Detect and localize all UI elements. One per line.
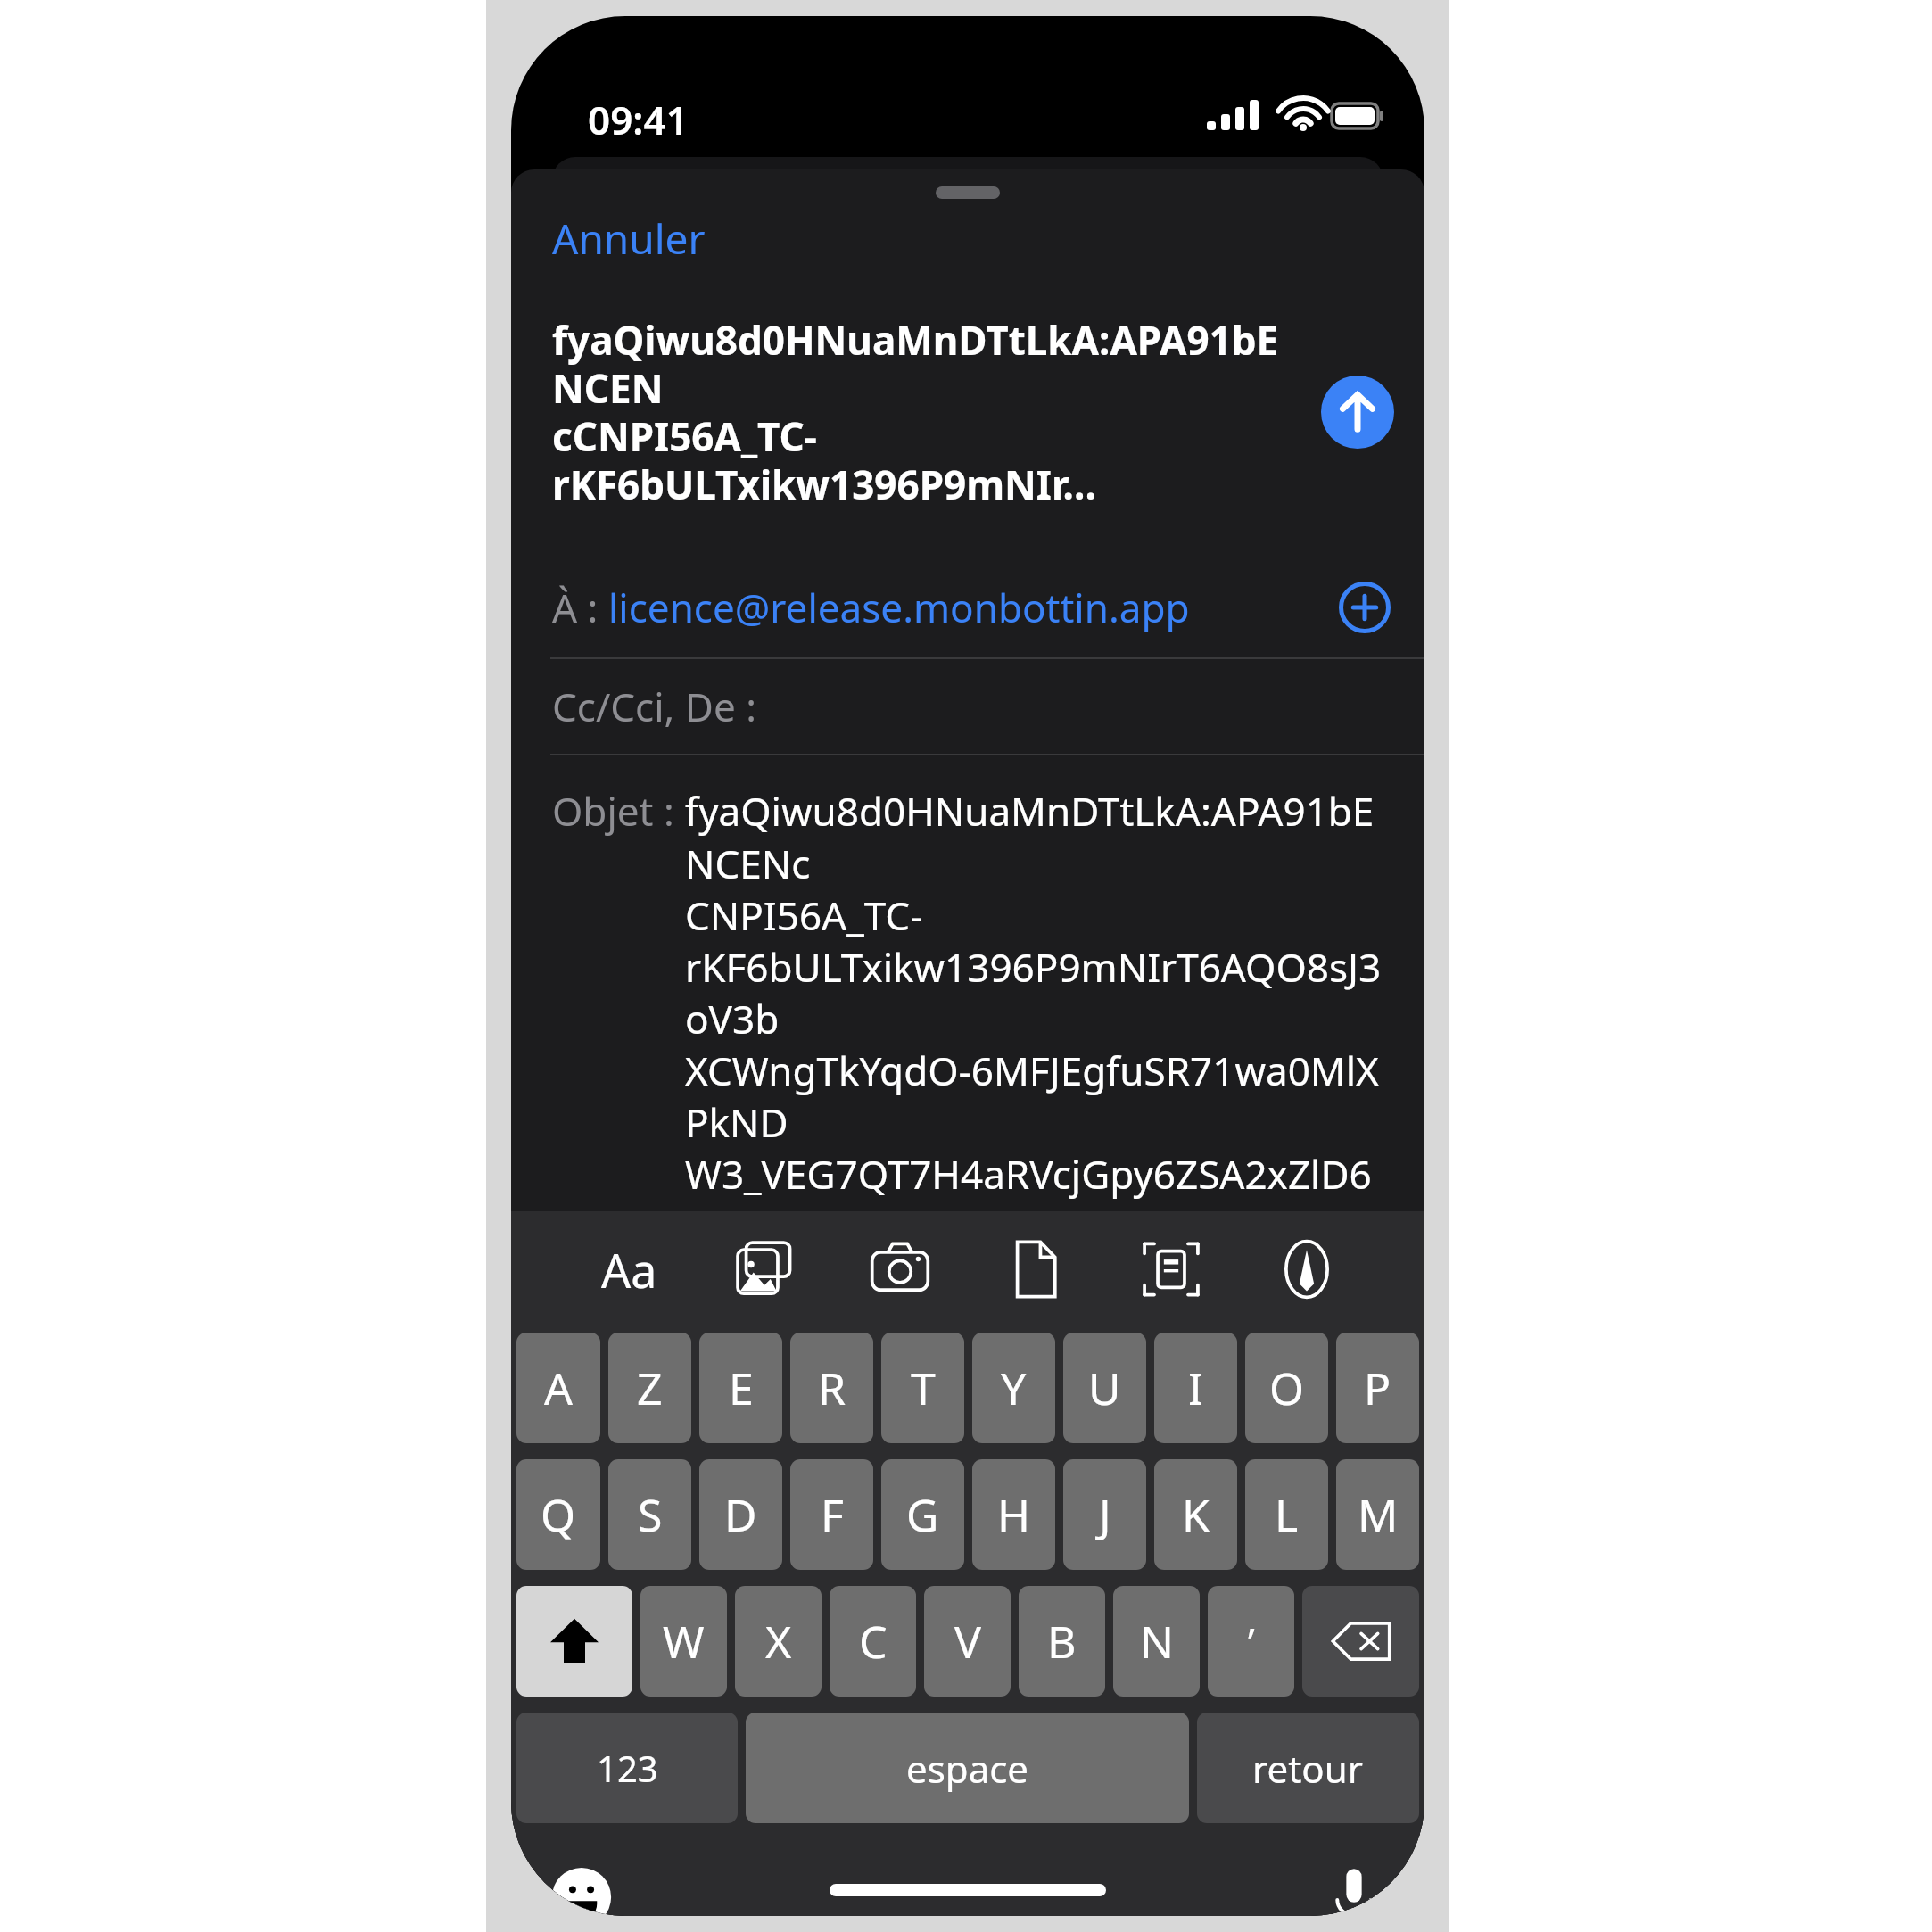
button[interactable]: Saisissez ici votre message xyxy=(511,1332,1424,1916)
staticText: Z xyxy=(637,1358,663,1418)
button[interactable]: Objet : xyxy=(511,755,1424,1330)
staticText: Cc/Cci, De : xyxy=(552,680,756,733)
button[interactable]: W xyxy=(640,1586,727,1697)
button[interactable]: Majuscule xyxy=(516,1586,632,1697)
button[interactable]: T xyxy=(881,1333,964,1443)
button[interactable]: C xyxy=(830,1586,916,1697)
button[interactable]: Annotation xyxy=(1264,1226,1350,1312)
staticText: W xyxy=(663,1611,705,1672)
button[interactable]: S xyxy=(608,1459,691,1570)
button[interactable]: P xyxy=(1336,1333,1419,1443)
button[interactable]: D xyxy=(699,1459,782,1570)
staticText: Q xyxy=(541,1484,576,1545)
button[interactable]: H xyxy=(972,1459,1055,1570)
button[interactable]: O xyxy=(1245,1333,1328,1443)
button[interactable]: ’ xyxy=(1208,1586,1294,1697)
staticText: I xyxy=(1188,1358,1203,1418)
button[interactable]: espace xyxy=(746,1713,1189,1823)
button[interactable]: Cc/Cci, De : xyxy=(511,659,1424,754)
staticText: P xyxy=(1364,1358,1391,1418)
staticText: M xyxy=(1358,1484,1399,1545)
button[interactable]: J xyxy=(1063,1459,1146,1570)
staticText: L xyxy=(1275,1484,1299,1545)
staticText: fyaQiwu8d0HNuaMnDTtLkA:APA91bENCENc CNPI… xyxy=(685,784,1394,1303)
staticText: J xyxy=(1099,1484,1111,1545)
staticText: H xyxy=(997,1484,1031,1545)
button[interactable]: L xyxy=(1245,1459,1328,1570)
staticText: C xyxy=(859,1611,888,1672)
button[interactable]: À : xyxy=(511,557,1424,657)
staticText: S xyxy=(638,1484,663,1545)
staticText: fyaQiwu8d0HNuaMnDTtLkA:APA91bENCEN cCNPI… xyxy=(552,313,1307,511)
staticText: 123 xyxy=(597,1744,658,1792)
staticText: À : xyxy=(552,581,608,634)
button[interactable]: retour xyxy=(1197,1713,1419,1823)
staticText: ’ xyxy=(1248,1614,1255,1668)
button[interactable]: R xyxy=(790,1333,873,1443)
staticText: T xyxy=(911,1358,936,1418)
staticText: 09:41 xyxy=(588,93,689,146)
staticText: R xyxy=(818,1358,846,1418)
staticText: licence@release.monbottin.app xyxy=(608,581,1190,634)
staticText: retour xyxy=(1252,1743,1364,1794)
staticText: D xyxy=(724,1484,757,1545)
staticText: V xyxy=(954,1611,981,1672)
button[interactable]: Envoyer xyxy=(1321,376,1394,449)
button[interactable]: E xyxy=(699,1333,782,1443)
button[interactable]: M xyxy=(1336,1459,1419,1570)
button[interactable]: Appareil photo xyxy=(857,1226,943,1312)
button[interactable]: K xyxy=(1154,1459,1237,1570)
button[interactable]: Numériser xyxy=(1128,1226,1214,1312)
staticText: F xyxy=(821,1484,844,1545)
button[interactable]: I xyxy=(1154,1333,1237,1443)
button[interactable]: N xyxy=(1113,1586,1200,1697)
staticText: espace xyxy=(906,1743,1029,1794)
button[interactable]: Photothèque xyxy=(722,1226,807,1312)
staticText: E xyxy=(729,1358,754,1418)
button[interactable]: Q xyxy=(516,1459,600,1570)
staticText: U xyxy=(1088,1358,1121,1418)
staticText: Saisissez ici votre message xyxy=(556,1355,1069,1411)
button[interactable]: X xyxy=(735,1586,822,1697)
button[interactable]: V xyxy=(924,1586,1011,1697)
button[interactable]: Dictée xyxy=(1314,1857,1394,1916)
staticText: K xyxy=(1182,1484,1210,1545)
button[interactable]: Supprimer xyxy=(1302,1586,1419,1697)
button[interactable]: U xyxy=(1063,1333,1146,1443)
staticText: A xyxy=(544,1358,573,1418)
button[interactable]: Ajouter un contact xyxy=(1335,578,1394,637)
staticText: Annuler xyxy=(552,211,706,267)
button[interactable]: G xyxy=(881,1459,964,1570)
staticText: Y xyxy=(1001,1358,1027,1418)
staticText: O xyxy=(1269,1358,1305,1418)
button[interactable]: F xyxy=(790,1459,873,1570)
button[interactable]: 123 xyxy=(516,1713,738,1823)
button[interactable]: Z xyxy=(608,1333,691,1443)
staticText: X xyxy=(765,1611,792,1672)
button[interactable]: B xyxy=(1019,1586,1105,1697)
button[interactable]: Annuler xyxy=(552,205,706,272)
staticText: Objet : xyxy=(552,784,685,838)
staticText: Aa xyxy=(601,1238,657,1301)
button[interactable]: Emoji xyxy=(541,1857,622,1916)
staticText: G xyxy=(906,1484,939,1545)
button[interactable]: Y xyxy=(972,1333,1055,1443)
staticText: B xyxy=(1047,1611,1077,1672)
button[interactable]: Format du texte xyxy=(586,1226,672,1312)
staticText: N xyxy=(1140,1611,1174,1672)
button[interactable]: Document xyxy=(993,1226,1078,1312)
button[interactable]: A xyxy=(516,1333,600,1443)
